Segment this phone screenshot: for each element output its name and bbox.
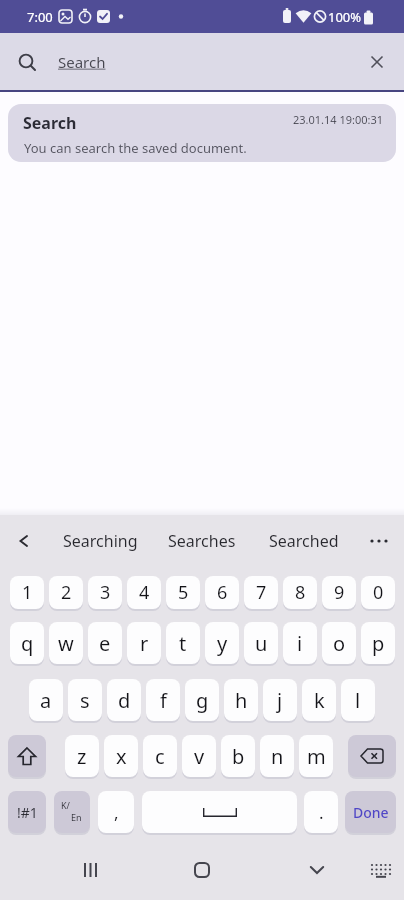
staticText: u — [255, 630, 268, 657]
button[interactable]: 6 — [205, 576, 239, 609]
button[interactable]: b — [221, 735, 255, 777]
button[interactable] — [8, 735, 46, 777]
button[interactable]: n — [260, 735, 294, 777]
staticText: . — [319, 801, 324, 824]
staticText: i — [297, 630, 303, 657]
button[interactable]: 7 — [244, 576, 278, 609]
button[interactable] — [142, 791, 297, 833]
staticText: 3 — [100, 580, 111, 605]
button[interactable]: d — [107, 679, 141, 721]
button[interactable]: l — [341, 679, 375, 721]
button[interactable]: , — [98, 791, 134, 833]
button[interactable]: 8 — [283, 576, 317, 609]
staticText: s — [80, 687, 90, 714]
staticText: K/ — [61, 799, 70, 811]
button[interactable]: c — [143, 735, 177, 777]
button[interactable]: 1 — [10, 576, 44, 609]
button[interactable]: e — [88, 622, 122, 664]
button[interactable]: h — [224, 679, 258, 721]
button[interactable] — [348, 735, 396, 777]
staticText: Searching — [63, 530, 138, 552]
staticText: k — [314, 687, 325, 714]
button[interactable]: q — [10, 622, 44, 664]
staticText: 9 — [334, 580, 345, 605]
button[interactable]: z — [65, 735, 99, 777]
staticText: 6 — [217, 580, 228, 605]
staticText: 4 — [139, 580, 150, 605]
button[interactable]: s — [68, 679, 102, 721]
staticText: p — [372, 630, 385, 657]
button[interactable] — [184, 852, 220, 888]
button[interactable]: m — [299, 735, 333, 777]
button[interactable] — [0, 33, 404, 90]
staticText: l — [355, 687, 361, 714]
button[interactable]: f — [146, 679, 180, 721]
staticText: 7:00 — [27, 8, 53, 26]
button[interactable]: j — [263, 679, 297, 721]
staticText: c — [155, 743, 165, 770]
staticText: z — [77, 743, 87, 770]
button[interactable]: i — [283, 622, 317, 664]
button[interactable]: 9 — [322, 576, 356, 609]
button[interactable] — [299, 852, 335, 888]
button[interactable]: w — [49, 622, 83, 664]
button[interactable] — [364, 854, 398, 886]
staticText: 5 — [178, 580, 189, 605]
staticText: 2 — [61, 580, 72, 605]
button[interactable]: . — [304, 791, 338, 833]
staticText: o — [333, 630, 346, 657]
button[interactable]: K/ — [54, 791, 90, 833]
button[interactable]: 3 — [88, 576, 122, 609]
staticText: You can search the saved document. — [24, 139, 247, 157]
button[interactable] — [362, 47, 392, 77]
staticText: x — [116, 743, 127, 770]
staticText: j — [277, 687, 283, 714]
button[interactable]: 5 — [166, 576, 200, 609]
button[interactable]: r — [127, 622, 161, 664]
staticText: Done — [353, 803, 389, 822]
button[interactable] — [362, 524, 396, 558]
staticText: v — [194, 743, 205, 770]
button[interactable]: u — [244, 622, 278, 664]
staticText: a — [40, 687, 52, 714]
button[interactable]: a — [29, 679, 63, 721]
staticText: Searches — [168, 530, 236, 552]
staticText: b — [232, 743, 245, 770]
button[interactable]: 0 — [361, 576, 395, 609]
staticText: e — [99, 630, 111, 657]
staticText: q — [21, 630, 34, 657]
button[interactable]: y — [205, 622, 239, 664]
button[interactable]: x — [104, 735, 138, 777]
staticText: , — [114, 801, 119, 824]
staticText: m — [307, 743, 326, 770]
button[interactable] — [8, 524, 40, 558]
staticText: g — [196, 687, 209, 714]
button[interactable]: t — [166, 622, 200, 664]
button[interactable]: 2 — [49, 576, 83, 609]
staticText: d — [118, 687, 131, 714]
button[interactable]: !#1 — [8, 791, 46, 833]
button[interactable]: o — [322, 622, 356, 664]
button[interactable]: k — [302, 679, 336, 721]
staticText: y — [217, 630, 228, 657]
staticText: 1 — [22, 580, 33, 605]
staticText: t — [179, 630, 187, 657]
button[interactable]: p — [361, 622, 395, 664]
staticText: n — [271, 743, 284, 770]
staticText: Searched — [269, 530, 339, 552]
button[interactable]: 4 — [127, 576, 161, 609]
staticText: 100% — [328, 8, 362, 26]
staticText: 0 — [373, 580, 384, 605]
staticText: 8 — [295, 580, 306, 605]
staticText: Search — [23, 112, 77, 134]
staticText: 23.01.14 19:00:31 — [293, 112, 384, 127]
button[interactable] — [72, 852, 108, 888]
button[interactable]: g — [185, 679, 219, 721]
button[interactable]: Done — [345, 791, 396, 833]
staticText: f — [160, 687, 167, 714]
button[interactable] — [8, 104, 396, 162]
staticText: Search — [58, 52, 106, 72]
button[interactable]: v — [182, 735, 216, 777]
staticText: 7 — [256, 580, 267, 605]
staticText: w — [58, 630, 74, 657]
